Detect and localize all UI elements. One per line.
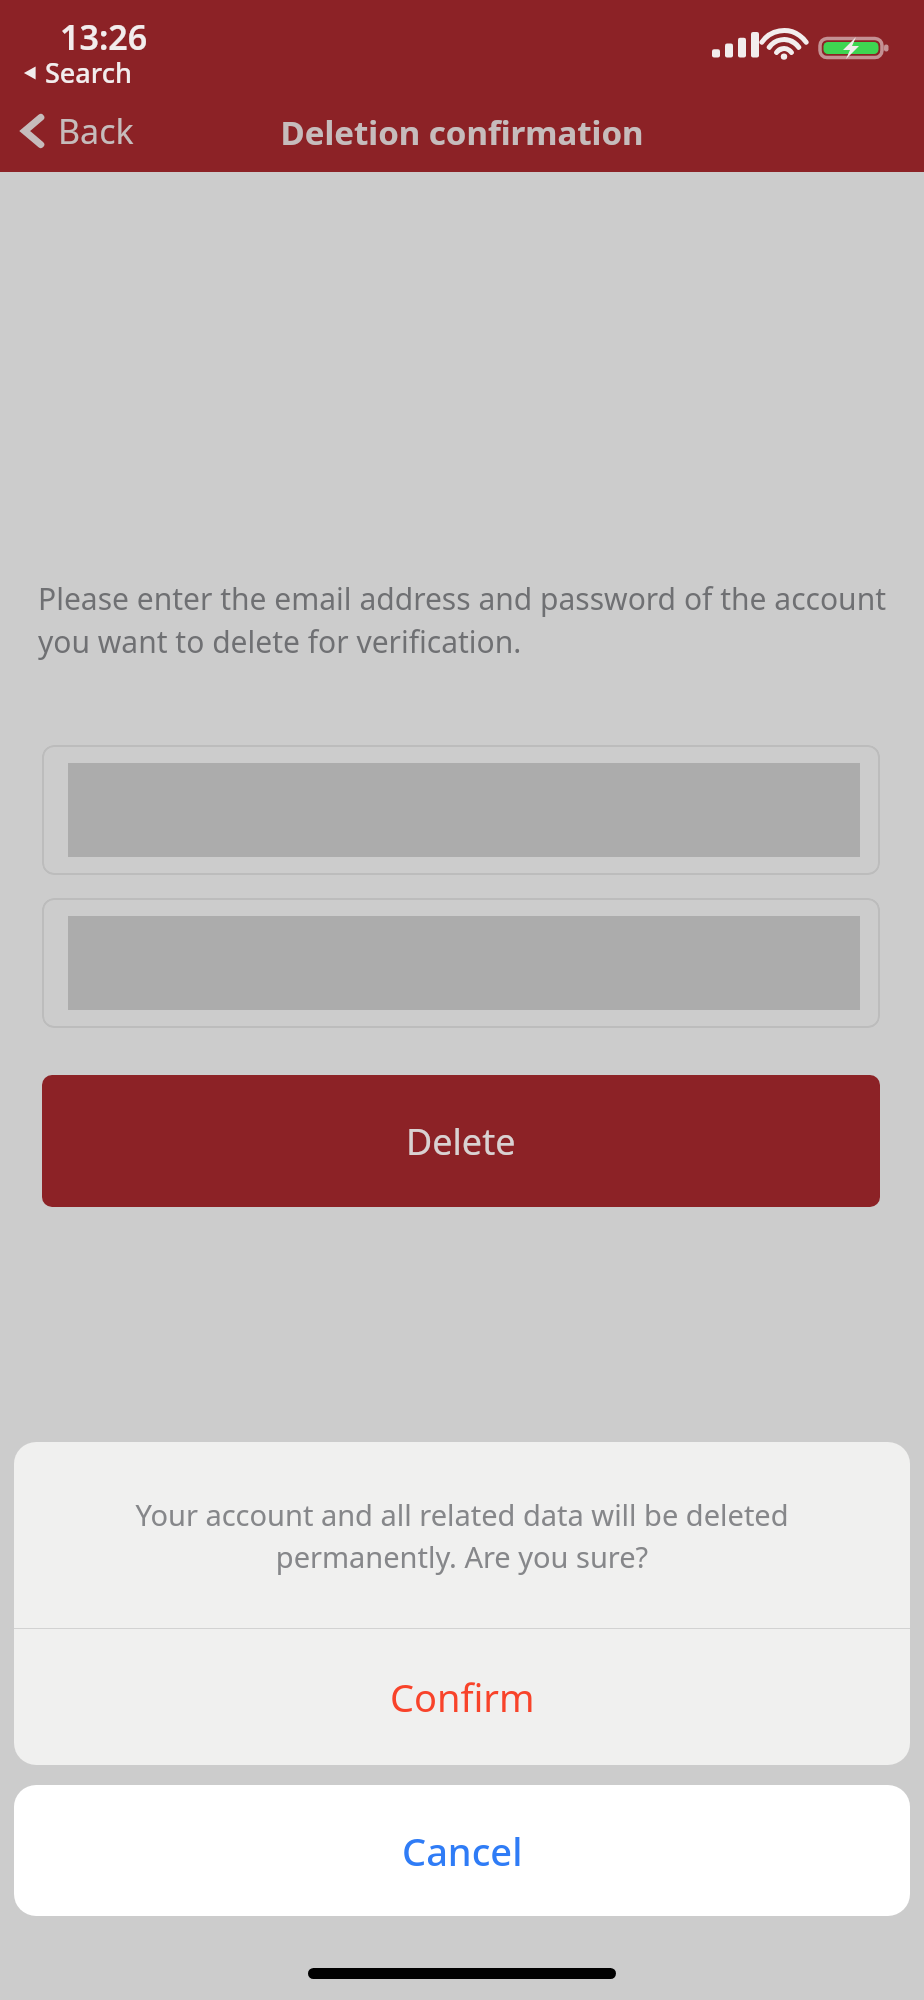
button[interactable]	[42, 898, 880, 1028]
staticText: Back	[58, 108, 134, 154]
staticText: Your account and all related data will b…	[70, 1495, 854, 1576]
button[interactable]: Cancel	[14, 1785, 910, 1916]
staticText: Please enter the email address and passw…	[38, 578, 886, 662]
staticText: 13:26	[60, 14, 148, 60]
button[interactable]: Back to Search	[22, 54, 132, 91]
button[interactable]: Delete	[42, 1075, 880, 1207]
staticText: Deletion confirmation	[0, 110, 924, 155]
button[interactable]	[42, 745, 880, 875]
button[interactable]: Back	[14, 100, 140, 162]
staticText: Search	[45, 54, 132, 91]
staticText: Delete	[406, 1117, 516, 1166]
staticText: Confirm	[390, 1671, 535, 1723]
staticText: Cancel	[402, 1825, 523, 1877]
button[interactable]: Confirm	[14, 1629, 910, 1765]
